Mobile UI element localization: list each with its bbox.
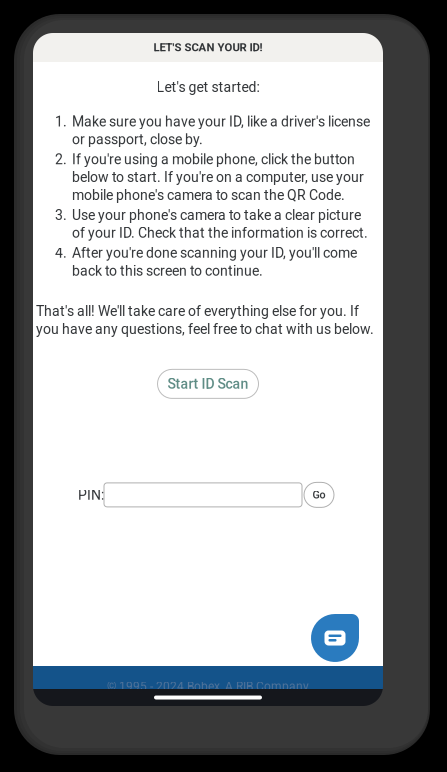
staticText: PIN: xyxy=(78,487,104,503)
staticText: © 1995 - 2024 Bobex, A RIB Company xyxy=(107,679,309,694)
staticText: 4. xyxy=(55,245,67,261)
button[interactable]: Start ID Scan xyxy=(157,369,258,398)
staticText: 1. xyxy=(55,113,67,130)
staticText: Go xyxy=(312,489,325,501)
staticText: 3. xyxy=(55,207,67,223)
staticText: If you're using a mobile phone, click th… xyxy=(72,151,364,203)
staticText: Make sure you have your ID, like a drive… xyxy=(72,113,370,148)
staticText: 2. xyxy=(55,151,67,168)
staticText: LET'S SCAN YOUR ID! xyxy=(153,41,262,54)
staticText: Let's get started: xyxy=(156,79,259,95)
staticText: After you're done scanning your ID, you'… xyxy=(72,245,357,279)
button[interactable]: Chat with us xyxy=(310,614,360,662)
staticText: Start ID Scan xyxy=(167,376,248,392)
staticText: That's all! We'll take care of everythin… xyxy=(36,303,374,337)
button[interactable]: Go xyxy=(304,482,334,507)
staticText: Use your phone's camera to take a clear … xyxy=(72,207,368,241)
